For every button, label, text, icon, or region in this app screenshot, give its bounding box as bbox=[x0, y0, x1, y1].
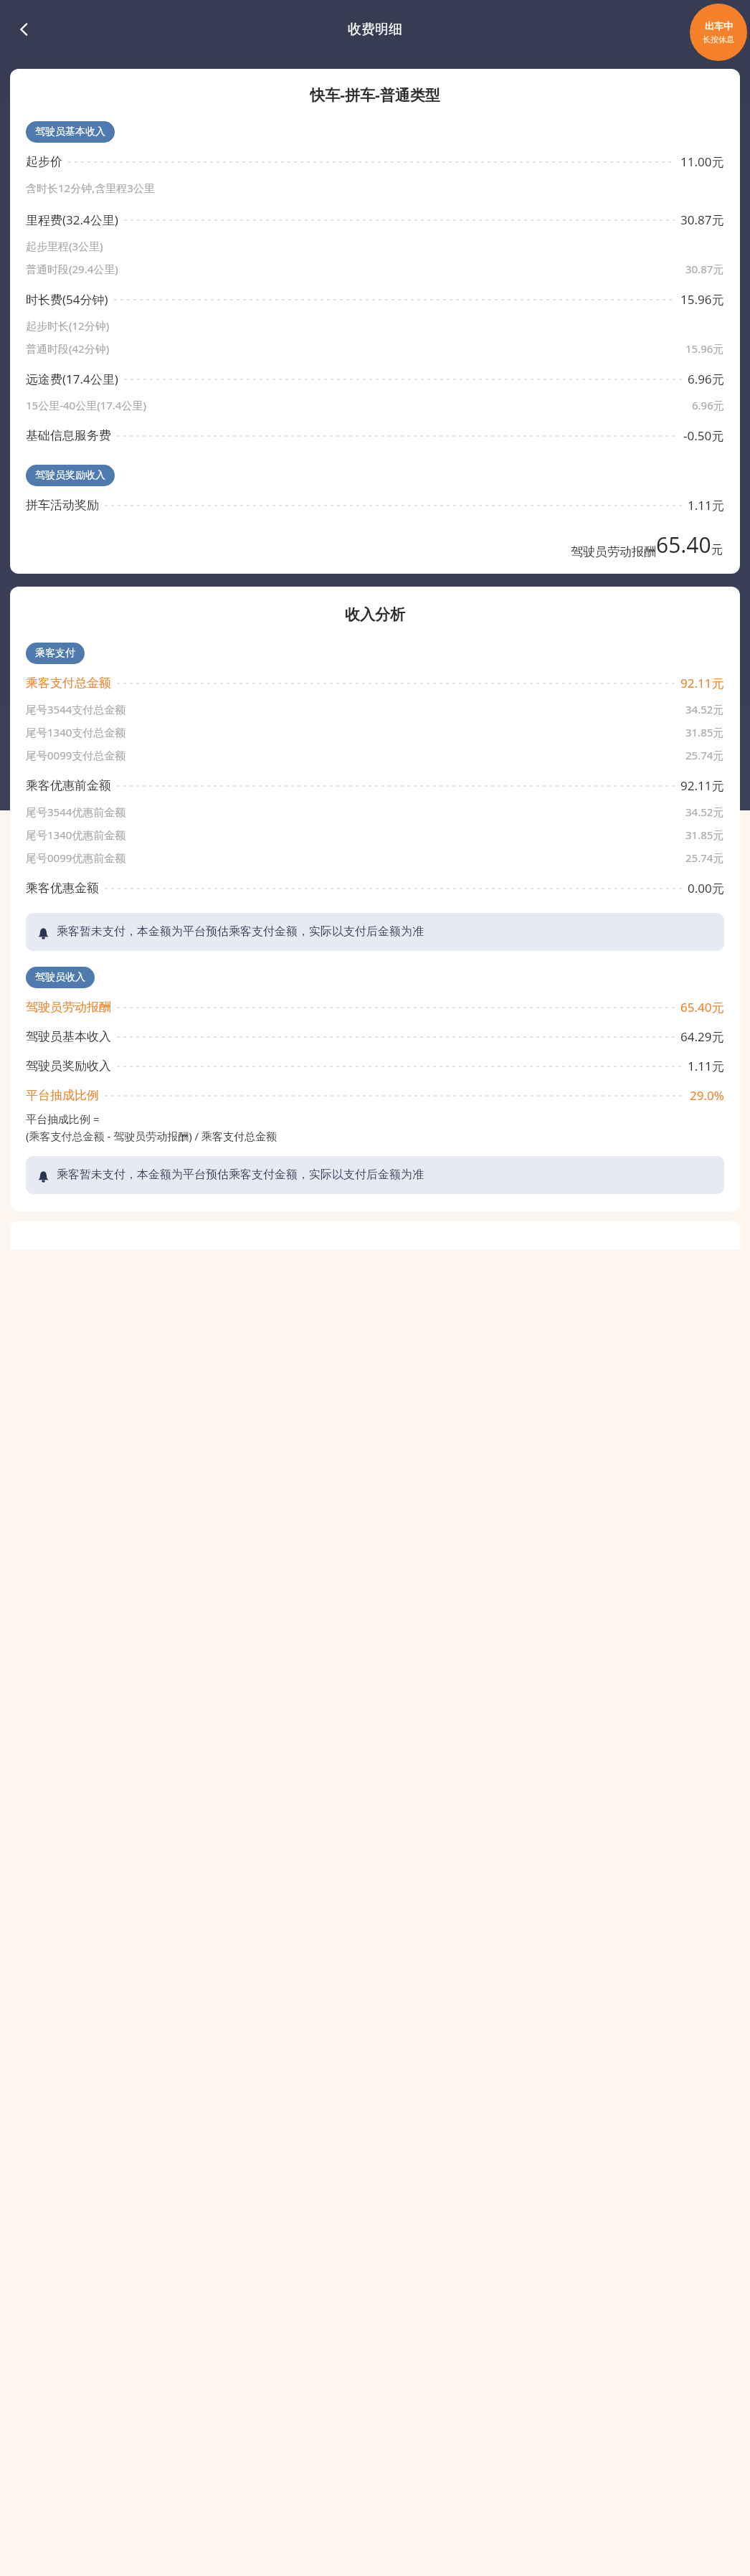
staticText: 92.11元 bbox=[680, 675, 724, 691]
staticText: 尾号3544优惠前金额 bbox=[26, 805, 126, 819]
staticText: 尾号3544支付总金额 bbox=[26, 702, 126, 716]
button[interactable]: 乘客支付总金额 bbox=[10, 668, 740, 698]
staticText: 15.96元 bbox=[685, 341, 724, 356]
staticText: 尾号0099支付总金额 bbox=[26, 748, 126, 762]
staticText: 出车中 bbox=[705, 20, 733, 32]
staticText: 远途费(17.4公里) bbox=[26, 371, 118, 387]
staticText: 15.96元 bbox=[680, 291, 724, 308]
staticText: (乘客支付总金额 - 驾驶员劳动报酬) / 乘客支付总金额 bbox=[26, 1129, 277, 1143]
button[interactable]: 里程费(32.4公里) bbox=[10, 205, 740, 235]
staticText: 拼车活动奖励 bbox=[26, 498, 99, 513]
button[interactable]: 拼车活动奖励 bbox=[10, 491, 740, 520]
staticText: -0.50元 bbox=[683, 427, 724, 444]
staticText: 元 bbox=[711, 543, 723, 557]
staticText: 30.87元 bbox=[685, 262, 724, 276]
staticText: 驾驶员收入 bbox=[35, 971, 85, 984]
staticText: 快车-拼车-普通类型 bbox=[10, 85, 740, 105]
staticText: 普通时段(42分钟) bbox=[26, 341, 110, 356]
staticText: 1.11元 bbox=[688, 497, 724, 513]
staticText: 乘客暂未支付，本金额为平台预估乘客支付金额，实际以支付后金额为准 bbox=[57, 1168, 424, 1182]
staticText: 驾驶员奖励收入 bbox=[35, 469, 105, 482]
staticText: 65.40 bbox=[656, 530, 711, 559]
staticText: 29.0% bbox=[690, 1087, 724, 1104]
button[interactable]: 驾驶员收入 bbox=[26, 967, 95, 988]
staticText: 65.40元 bbox=[680, 999, 724, 1015]
staticText: 尾号1340支付总金额 bbox=[26, 725, 126, 739]
staticText: 31.85元 bbox=[685, 725, 724, 739]
button[interactable]: 乘客支付 bbox=[26, 643, 85, 664]
button[interactable]: 时长费(54分钟) bbox=[10, 285, 740, 314]
staticText: 34.52元 bbox=[685, 702, 724, 716]
staticText: 0.00元 bbox=[688, 880, 724, 896]
staticText: 乘客支付 bbox=[35, 647, 75, 660]
staticText: 64.29元 bbox=[680, 1028, 724, 1045]
button[interactable]: Back bbox=[10, 15, 39, 44]
staticText: 驾驶员基本收入 bbox=[35, 126, 105, 138]
staticText: 31.85元 bbox=[685, 828, 724, 842]
staticText: 驾驶员基本收入 bbox=[26, 1029, 111, 1044]
staticText: 乘客支付总金额 bbox=[26, 676, 111, 691]
staticText: 时长费(54分钟) bbox=[26, 291, 108, 308]
staticText: 里程费(32.4公里) bbox=[26, 212, 118, 228]
staticText: 30.87元 bbox=[680, 212, 724, 228]
button[interactable]: 驾驶员基本收入 bbox=[10, 1022, 740, 1051]
button[interactable]: 驾驶员奖励收入 bbox=[10, 1051, 740, 1081]
staticText: 92.11元 bbox=[680, 777, 724, 794]
staticText: 11.00元 bbox=[680, 153, 724, 170]
staticText: 平台抽成比例 = bbox=[26, 1112, 100, 1126]
staticText: 6.96元 bbox=[688, 371, 724, 387]
staticText: 乘客优惠金额 bbox=[26, 881, 99, 896]
staticText: 34.52元 bbox=[685, 805, 724, 819]
staticText: 乘客优惠前金额 bbox=[26, 778, 111, 793]
staticText: 普通时段(29.4公里) bbox=[26, 262, 118, 276]
staticText: 基础信息服务费 bbox=[26, 428, 111, 443]
staticText: 起步价 bbox=[26, 154, 62, 169]
staticText: 25.74元 bbox=[685, 748, 724, 762]
staticText: 起步时长(12分钟) bbox=[26, 318, 110, 333]
button[interactable]: 驾驶员劳动报酬 bbox=[10, 993, 740, 1022]
button[interactable]: 乘客优惠金额 bbox=[10, 873, 740, 903]
staticText: 尾号1340优惠前金额 bbox=[26, 828, 126, 842]
staticText: 含时长12分钟,含里程3公里 bbox=[26, 181, 155, 195]
staticText: 乘客暂未支付，本金额为平台预估乘客支付金额，实际以支付后金额为准 bbox=[57, 924, 424, 939]
button[interactable]: 驾驶员基本收入 bbox=[26, 121, 115, 143]
staticText: 平台抽成比例 bbox=[26, 1088, 99, 1103]
staticText: 1.11元 bbox=[688, 1058, 724, 1074]
button[interactable]: 平台抽成比例 bbox=[10, 1081, 740, 1110]
button[interactable]: 乘客优惠前金额 bbox=[10, 771, 740, 800]
button[interactable]: 出车中 bbox=[690, 4, 747, 61]
staticText: 驾驶员奖励收入 bbox=[26, 1059, 111, 1074]
staticText: 起步里程(3公里) bbox=[26, 239, 103, 253]
staticText: 尾号0099优惠前金额 bbox=[26, 851, 126, 865]
staticText: 15公里-40公里(17.4公里) bbox=[26, 398, 146, 412]
staticText: 长按休息 bbox=[703, 34, 734, 44]
staticText: 收费明细 bbox=[348, 21, 402, 38]
staticText: 25.74元 bbox=[685, 851, 724, 865]
button[interactable]: 远途费(17.4公里) bbox=[10, 364, 740, 394]
button[interactable]: 驾驶员奖励收入 bbox=[26, 465, 115, 486]
staticText: 驾驶员劳动报酬 bbox=[26, 1000, 111, 1015]
staticText: 驾驶员劳动报酬 bbox=[571, 544, 656, 559]
staticText: 收入分析 bbox=[10, 605, 740, 624]
staticText: 6.96元 bbox=[692, 398, 724, 412]
button[interactable]: 起步价 bbox=[10, 147, 740, 176]
button[interactable]: 基础信息服务费 bbox=[10, 421, 740, 450]
